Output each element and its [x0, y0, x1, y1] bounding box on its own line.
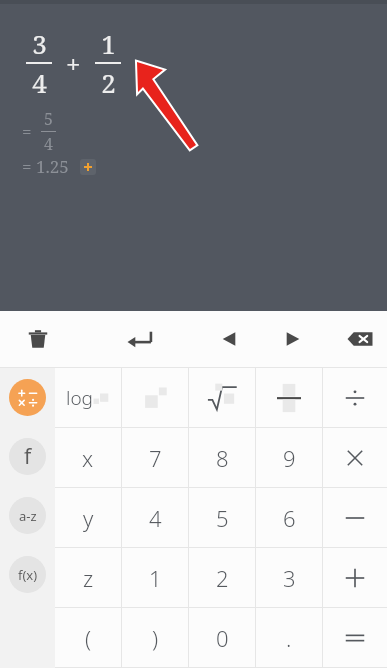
button[interactable]: 7	[122, 428, 188, 487]
staticText: f	[24, 442, 32, 471]
button[interactable]: x	[55, 428, 121, 487]
button[interactable]	[323, 608, 387, 667]
staticText: =	[22, 120, 32, 143]
staticText: 4	[149, 503, 162, 533]
staticText: 8	[216, 443, 229, 473]
staticText: 5	[216, 503, 229, 533]
staticText: 4	[44, 133, 53, 155]
staticText: 1	[101, 26, 116, 61]
button[interactable]: 9	[256, 428, 322, 487]
button[interactable]: z	[55, 548, 121, 607]
staticText: y	[83, 503, 94, 533]
button[interactable]	[122, 368, 188, 427]
button[interactable]: Enter	[112, 311, 168, 367]
button[interactable]: 5	[189, 488, 255, 547]
button[interactable]: y	[55, 488, 121, 547]
button[interactable]: Move right	[265, 311, 321, 367]
staticText: log	[66, 385, 93, 411]
button[interactable]: Backspace	[332, 311, 387, 367]
staticText: .	[286, 623, 292, 653]
button[interactable]: Move left	[201, 311, 257, 367]
staticText: 4	[32, 65, 47, 100]
staticText: 3	[283, 563, 296, 593]
button[interactable]: Letters	[9, 497, 46, 534]
button[interactable]: 1	[122, 548, 188, 607]
button[interactable]	[256, 368, 322, 427]
staticText: 5	[44, 108, 53, 130]
staticText: +	[66, 46, 81, 81]
button[interactable]: )	[122, 608, 188, 667]
staticText: )	[152, 623, 159, 653]
button[interactable]	[323, 548, 387, 607]
button[interactable]: 6	[256, 488, 322, 547]
button[interactable]: 2	[189, 548, 255, 607]
staticText: 2	[216, 563, 229, 593]
button[interactable]: Custom functions	[9, 556, 46, 593]
button[interactable]: Functions	[9, 438, 46, 475]
staticText: 2	[101, 65, 116, 100]
button[interactable]	[323, 368, 387, 427]
staticText: 6	[283, 503, 296, 533]
staticText: f(x)	[18, 566, 38, 584]
button[interactable]: 4	[122, 488, 188, 547]
button[interactable]: Clear	[10, 311, 66, 367]
staticText: 0	[216, 623, 229, 653]
staticText: a-z	[19, 507, 37, 525]
button[interactable]: .	[256, 608, 322, 667]
button[interactable]: 0	[189, 608, 255, 667]
staticText: 1	[149, 563, 162, 593]
button[interactable]: Expand result	[80, 159, 96, 175]
button[interactable]	[323, 428, 387, 487]
button[interactable]: 8	[189, 428, 255, 487]
button[interactable]	[323, 488, 387, 547]
button[interactable]: log	[55, 368, 121, 427]
staticText: 3	[32, 26, 47, 61]
button[interactable]	[189, 368, 255, 427]
button[interactable]: 3	[256, 548, 322, 607]
staticText: 7	[149, 443, 162, 473]
staticText: (	[85, 623, 92, 653]
staticText: x	[82, 443, 94, 473]
button[interactable]: Arithmetic operators	[9, 379, 46, 416]
button[interactable]: (	[55, 608, 121, 667]
staticText: z	[83, 563, 94, 593]
staticText: = 1.25	[22, 155, 69, 178]
staticText: 9	[283, 443, 296, 473]
